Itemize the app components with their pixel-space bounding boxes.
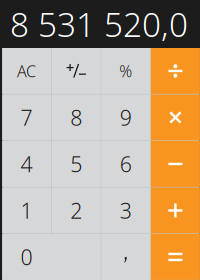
button[interactable]: Divide — [151, 48, 200, 94]
staticText: 3 — [120, 196, 132, 225]
staticText: 8 531 520,0 — [10, 2, 188, 46]
staticText: 7 — [21, 103, 33, 132]
staticText: 8 — [70, 103, 82, 132]
button[interactable]: 1 — [2, 187, 51, 233]
staticText: 1 — [21, 196, 33, 225]
button[interactable]: Plus — [151, 187, 200, 233]
staticText: 5 — [70, 150, 82, 178]
button[interactable]: 0 — [2, 234, 101, 280]
button[interactable]: AC — [2, 48, 51, 94]
staticText: 9 — [120, 103, 132, 132]
staticText: 6 — [120, 150, 132, 178]
button[interactable]: Toggle sign — [52, 48, 101, 94]
button[interactable]: 7 — [2, 94, 51, 140]
staticText: 0 — [21, 243, 33, 271]
staticText: % — [119, 60, 132, 81]
button[interactable]: 9 — [101, 94, 150, 140]
button[interactable]: 2 — [52, 187, 101, 233]
button[interactable]: Equals — [151, 234, 200, 280]
button[interactable]: 8 — [52, 94, 101, 140]
button[interactable]: 5 — [52, 141, 101, 187]
button[interactable]: Decimal separator — [101, 234, 150, 280]
staticText: 4 — [21, 150, 33, 178]
button[interactable]: % — [101, 48, 150, 94]
button[interactable]: 4 — [2, 141, 51, 187]
staticText: 2 — [70, 196, 82, 225]
button[interactable]: 3 — [101, 187, 150, 233]
staticText: AC — [17, 60, 36, 81]
button[interactable]: Minus — [151, 141, 200, 187]
button[interactable]: 6 — [101, 141, 150, 187]
button[interactable]: Multiply — [151, 94, 200, 140]
